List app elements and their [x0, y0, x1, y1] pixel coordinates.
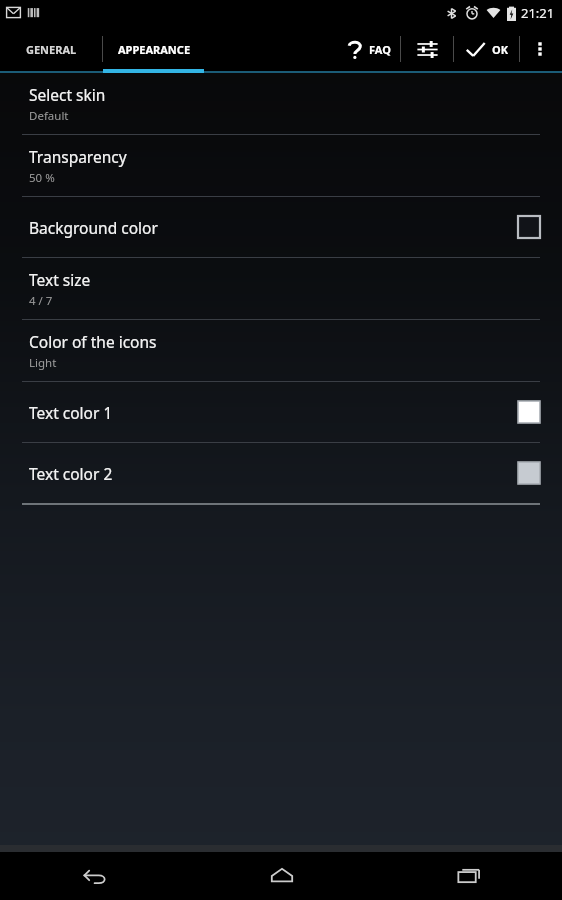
- staticText: 4 / 7: [29, 293, 53, 309]
- staticText: Color of the icons: [29, 331, 157, 352]
- staticText: Text color 1: [29, 402, 113, 423]
- button[interactable]: APPEARANCE: [103, 25, 205, 73]
- staticText: FAQ: [369, 42, 391, 57]
- button[interactable]: Text size: [0, 258, 562, 319]
- staticText: OK: [492, 42, 509, 57]
- staticText: 50 %: [29, 170, 55, 186]
- button[interactable]: Select skin: [0, 73, 562, 134]
- staticText: Text size: [29, 269, 91, 290]
- staticText: Text color 2: [29, 463, 113, 484]
- button[interactable]: Text color 1: [0, 382, 562, 442]
- button[interactable]: Home: [188, 852, 375, 900]
- button[interactable]: Background color: [0, 197, 562, 257]
- staticText: Background color: [29, 217, 158, 238]
- button[interactable]: Settings: [401, 25, 453, 73]
- staticText: 21:21: [521, 4, 555, 22]
- button[interactable]: Color of the icons: [0, 320, 562, 381]
- button[interactable]: OK: [464, 25, 509, 73]
- button[interactable]: FAQ: [345, 25, 391, 73]
- button[interactable]: Back: [0, 852, 188, 900]
- button[interactable]: GENERAL: [0, 25, 102, 73]
- staticText: GENERAL: [26, 42, 77, 57]
- staticText: Transparency: [29, 146, 127, 167]
- staticText: Default: [29, 108, 69, 124]
- staticText: Light: [29, 355, 57, 371]
- button[interactable]: Text color 2: [0, 443, 562, 503]
- staticText: Select skin: [29, 84, 106, 105]
- button[interactable]: Recent apps: [375, 852, 562, 900]
- button[interactable]: Transparency: [0, 135, 562, 196]
- staticText: APPEARANCE: [118, 42, 191, 57]
- button[interactable]: More options: [520, 25, 560, 73]
